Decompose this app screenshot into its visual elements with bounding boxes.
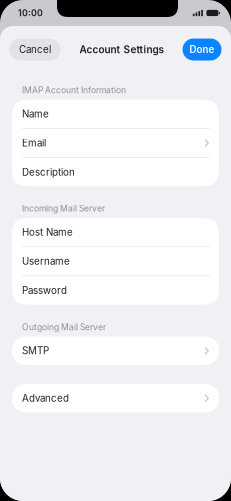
staticText: Email: [22, 137, 46, 149]
staticText: Name: [22, 108, 49, 120]
staticText: 10:00: [18, 8, 43, 18]
staticText: Cancel: [19, 44, 51, 55]
staticText: Account Settings: [79, 43, 163, 56]
button[interactable]: Advanced: [12, 384, 219, 412]
button[interactable]: Host Name: [12, 218, 219, 246]
button[interactable]: Description: [12, 158, 219, 186]
staticText: Username: [22, 255, 70, 267]
staticText: Outgoing Mail Server: [22, 322, 106, 332]
staticText: Incoming Mail Server: [22, 203, 105, 214]
button[interactable]: Email: [12, 129, 219, 157]
button[interactable]: Cancel: [9, 38, 60, 60]
button[interactable]: Password: [12, 276, 219, 305]
staticText: Host Name: [22, 226, 73, 238]
staticText: Advanced: [22, 392, 69, 404]
staticText: IMAP Account Information: [22, 85, 126, 95]
button[interactable]: Username: [12, 247, 219, 275]
button[interactable]: Name: [12, 100, 219, 128]
staticText: Password: [22, 284, 67, 296]
staticText: Description: [22, 166, 75, 178]
staticText: SMTP: [22, 345, 49, 357]
staticText: Done: [189, 44, 214, 55]
button[interactable]: SMTP: [12, 337, 219, 365]
button[interactable]: Done: [182, 38, 221, 60]
